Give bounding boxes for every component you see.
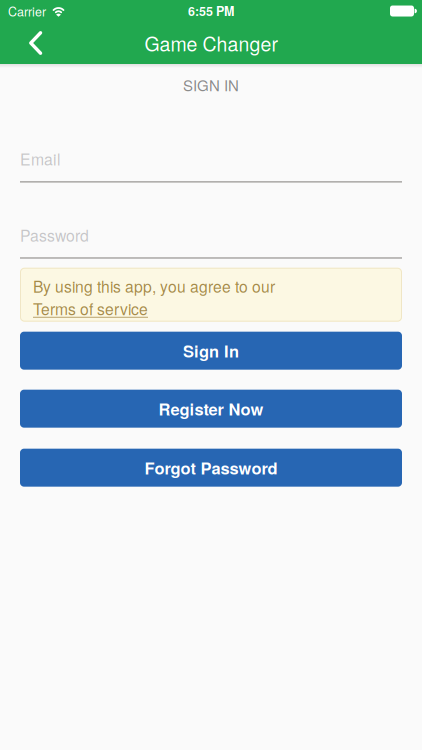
button[interactable]: Terms of service (33, 297, 148, 320)
staticText: Password (20, 224, 89, 246)
staticText: 6:55 PM (188, 2, 234, 20)
button[interactable]: Back (0, 22, 62, 64)
button[interactable]: Forgot Password (20, 449, 402, 487)
staticText: Register Now (158, 397, 263, 420)
staticText: SIGN IN (183, 74, 239, 95)
button[interactable]: Sign In (20, 332, 402, 370)
staticText: By using this app, you agree to our (33, 275, 275, 297)
staticText: Game Changer (144, 29, 277, 57)
staticText: Email (20, 147, 61, 170)
staticText: Sign In (183, 339, 239, 362)
staticText: Carrier (8, 2, 46, 20)
button[interactable]: Register Now (20, 390, 402, 428)
staticText: Terms of service (33, 297, 148, 320)
staticText: Forgot Password (144, 456, 277, 479)
